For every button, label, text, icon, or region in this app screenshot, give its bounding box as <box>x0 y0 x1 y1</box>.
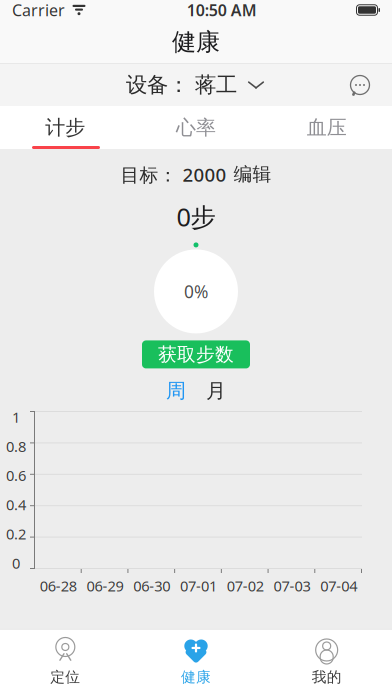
staticText: 07-04 <box>320 576 357 595</box>
button[interactable]: 设备： 蒋工 <box>114 65 278 105</box>
staticText: 0.8 <box>6 436 26 456</box>
button[interactable]: Messages <box>340 65 380 105</box>
staticText: 健康 <box>181 668 211 686</box>
button[interactable]: 我的 <box>261 637 392 686</box>
staticText: 月 <box>206 378 226 403</box>
staticText: 0.6 <box>6 466 26 485</box>
staticText: 0 <box>12 553 20 573</box>
staticText: 设备： 蒋工 <box>126 72 237 98</box>
staticText: 0% <box>184 280 208 303</box>
staticText: 心率 <box>176 115 216 140</box>
staticText: 定位 <box>50 668 80 686</box>
staticText: 计步 <box>45 115 85 140</box>
staticText: 健康 <box>172 27 220 57</box>
staticText: 编辑 <box>233 163 271 186</box>
button[interactable]: 周 <box>166 378 186 403</box>
button[interactable]: 编辑 <box>233 163 271 186</box>
button[interactable]: 获取步数 <box>142 340 250 368</box>
button[interactable]: 血压 <box>261 106 392 149</box>
button[interactable]: 月 <box>206 378 226 403</box>
staticText: 我的 <box>312 668 342 686</box>
staticText: 07-02 <box>227 576 264 595</box>
staticText: Carrier <box>12 0 65 21</box>
staticText: 06-28 <box>40 576 77 595</box>
button[interactable]: 健康 <box>131 637 261 686</box>
staticText: 目标： 2000 <box>120 162 226 187</box>
staticText: 1 <box>12 407 20 427</box>
staticText: 07-03 <box>273 576 310 595</box>
staticText: 06-29 <box>87 576 124 595</box>
staticText: 获取步数 <box>158 343 234 366</box>
button[interactable]: 心率 <box>131 106 261 149</box>
staticText: 血压 <box>307 115 347 140</box>
staticText: 周 <box>166 378 186 403</box>
staticText: 0.2 <box>6 524 26 544</box>
staticText: 0.4 <box>6 495 26 514</box>
staticText: 06-30 <box>133 576 170 595</box>
button[interactable]: 定位 <box>0 637 131 686</box>
button[interactable]: 计步 <box>0 106 131 149</box>
staticText: 10:50 AM <box>187 0 257 21</box>
staticText: 07-01 <box>180 576 217 595</box>
staticText: 0步 <box>176 200 215 233</box>
